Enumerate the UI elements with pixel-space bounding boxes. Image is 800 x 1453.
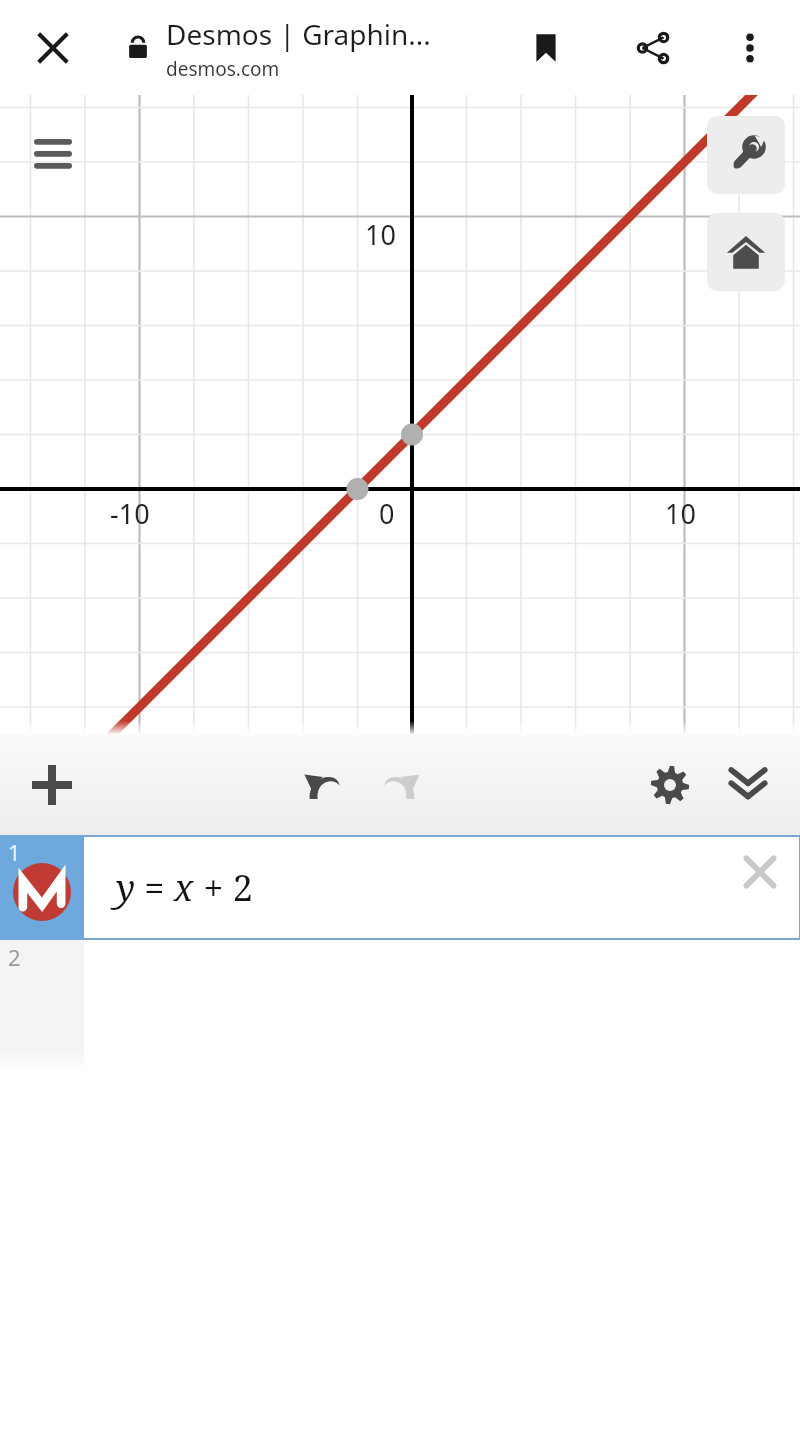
staticText: 10 (365, 216, 396, 253)
button[interactable]: 1 (0, 835, 800, 940)
button[interactable]: Graph settings (707, 116, 785, 194)
staticText: 10 (665, 495, 696, 532)
button[interactable]: Redo (362, 745, 442, 825)
staticText: 1 (8, 837, 21, 867)
staticText: 0 (379, 495, 395, 532)
button[interactable]: Hide expression list (710, 747, 786, 823)
staticText: -10 (110, 495, 150, 532)
staticText: y = x (116, 863, 194, 912)
button[interactable]: Desmos | Graphin... (166, 15, 496, 82)
button[interactable]: Share (615, 10, 691, 86)
staticText: 2 (8, 942, 21, 972)
button[interactable]: More options (712, 10, 788, 86)
staticText: desmos.com (166, 56, 280, 82)
button[interactable]: Close (14, 9, 92, 87)
button[interactable]: Add expression (12, 745, 92, 825)
button[interactable]: Bookmark (508, 10, 584, 86)
button[interactable]: Undo (282, 745, 362, 825)
button[interactable]: Show graph list (22, 123, 84, 185)
button[interactable]: Settings (632, 747, 708, 823)
button[interactable]: Delete expression (729, 841, 791, 903)
button[interactable]: Reset zoom (707, 213, 785, 291)
staticText: Desmos | Graphin... (166, 15, 431, 53)
staticText: + 2 (194, 863, 253, 912)
button[interactable]: 2 (0, 940, 800, 1070)
